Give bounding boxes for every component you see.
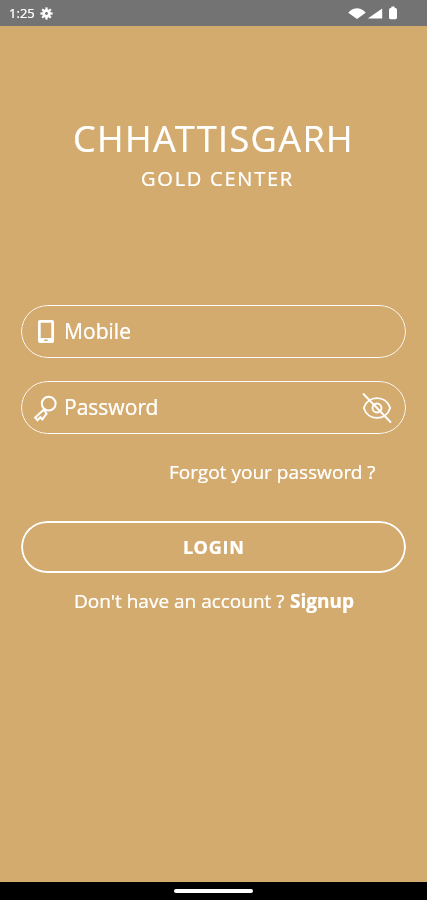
staticText: Mobile bbox=[64, 317, 131, 346]
staticText: CHHATTISGARH bbox=[0, 114, 427, 163]
button[interactable]: Forgot your password ? bbox=[169, 459, 376, 485]
button[interactable]: LOGIN bbox=[21, 521, 406, 573]
staticText: GOLD CENTER bbox=[4, 165, 427, 192]
button[interactable]: Password bbox=[21, 381, 406, 434]
staticText: 1:25 bbox=[9, 4, 35, 22]
staticText: Signup bbox=[290, 588, 354, 614]
button[interactable]: Show password bbox=[353, 381, 401, 434]
staticText: Password bbox=[64, 393, 159, 422]
staticText: LOGIN bbox=[183, 535, 245, 560]
staticText: Don't have an account ? bbox=[74, 588, 290, 614]
button[interactable]: Signup bbox=[290, 588, 354, 614]
button[interactable]: Mobile bbox=[21, 305, 406, 358]
staticText: Forgot your password ? bbox=[169, 459, 376, 485]
